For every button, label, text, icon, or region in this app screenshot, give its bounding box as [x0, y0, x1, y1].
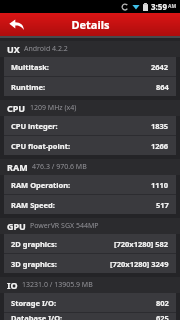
staticText: 625	[156, 313, 169, 320]
staticText: 517	[156, 200, 169, 210]
staticText: 3:59	[151, 1, 167, 12]
staticText: CPU float-point:	[11, 141, 71, 151]
button[interactable]: Storage I/O:	[4, 293, 176, 312]
button[interactable]: RAM Speed:	[4, 195, 176, 214]
button[interactable]: Multitask:	[4, 57, 176, 76]
staticText: Android 4.2.2	[24, 44, 68, 54]
staticText: UX	[7, 43, 20, 55]
button[interactable]: Database I/O:	[4, 313, 176, 320]
staticText: Storage I/O:	[11, 298, 57, 308]
button[interactable]: 2D graphics:	[4, 234, 176, 253]
staticText: 2642	[151, 62, 169, 72]
button[interactable]: CPU integer:	[4, 116, 176, 135]
button[interactable]: CPU float-point:	[4, 136, 176, 155]
staticText: [720x1280] 582	[114, 239, 169, 249]
staticText: CPU integer:	[11, 121, 58, 131]
staticText: CPU	[7, 102, 26, 114]
staticText: 2D graphics:	[11, 239, 57, 249]
staticText: 1835	[151, 121, 169, 131]
staticText: 13231.0 / 13905.9 MB	[22, 280, 93, 290]
staticText: 476.3 / 970.6 MB	[32, 162, 87, 172]
button[interactable]: Back	[0, 13, 32, 36]
staticText: 864	[156, 82, 169, 92]
staticText: GPU	[7, 220, 26, 232]
staticText: Runtime:	[11, 82, 46, 92]
staticText: 1266	[151, 141, 169, 151]
staticText: Database I/O:	[11, 313, 63, 320]
staticText: 802	[156, 298, 169, 308]
staticText: RAM	[7, 161, 28, 173]
staticText: RAM Speed:	[11, 200, 55, 210]
staticText: 3D graphics:	[11, 259, 57, 269]
staticText: 1110	[151, 180, 169, 190]
staticText: 1209 MHz (x4)	[30, 103, 77, 113]
button[interactable]: RAM Operation:	[4, 175, 176, 194]
staticText: AM	[168, 3, 177, 10]
button[interactable]: Runtime:	[4, 77, 176, 96]
staticText: [720x1280] 3249	[110, 259, 169, 269]
staticText: Details	[71, 17, 110, 32]
staticText: IO	[7, 279, 18, 291]
staticText: PowerVR SGX 544MP	[30, 221, 99, 231]
staticText: RAM Operation:	[11, 180, 71, 190]
staticText: Multitask:	[11, 62, 49, 72]
button[interactable]: 3D graphics:	[4, 254, 176, 273]
